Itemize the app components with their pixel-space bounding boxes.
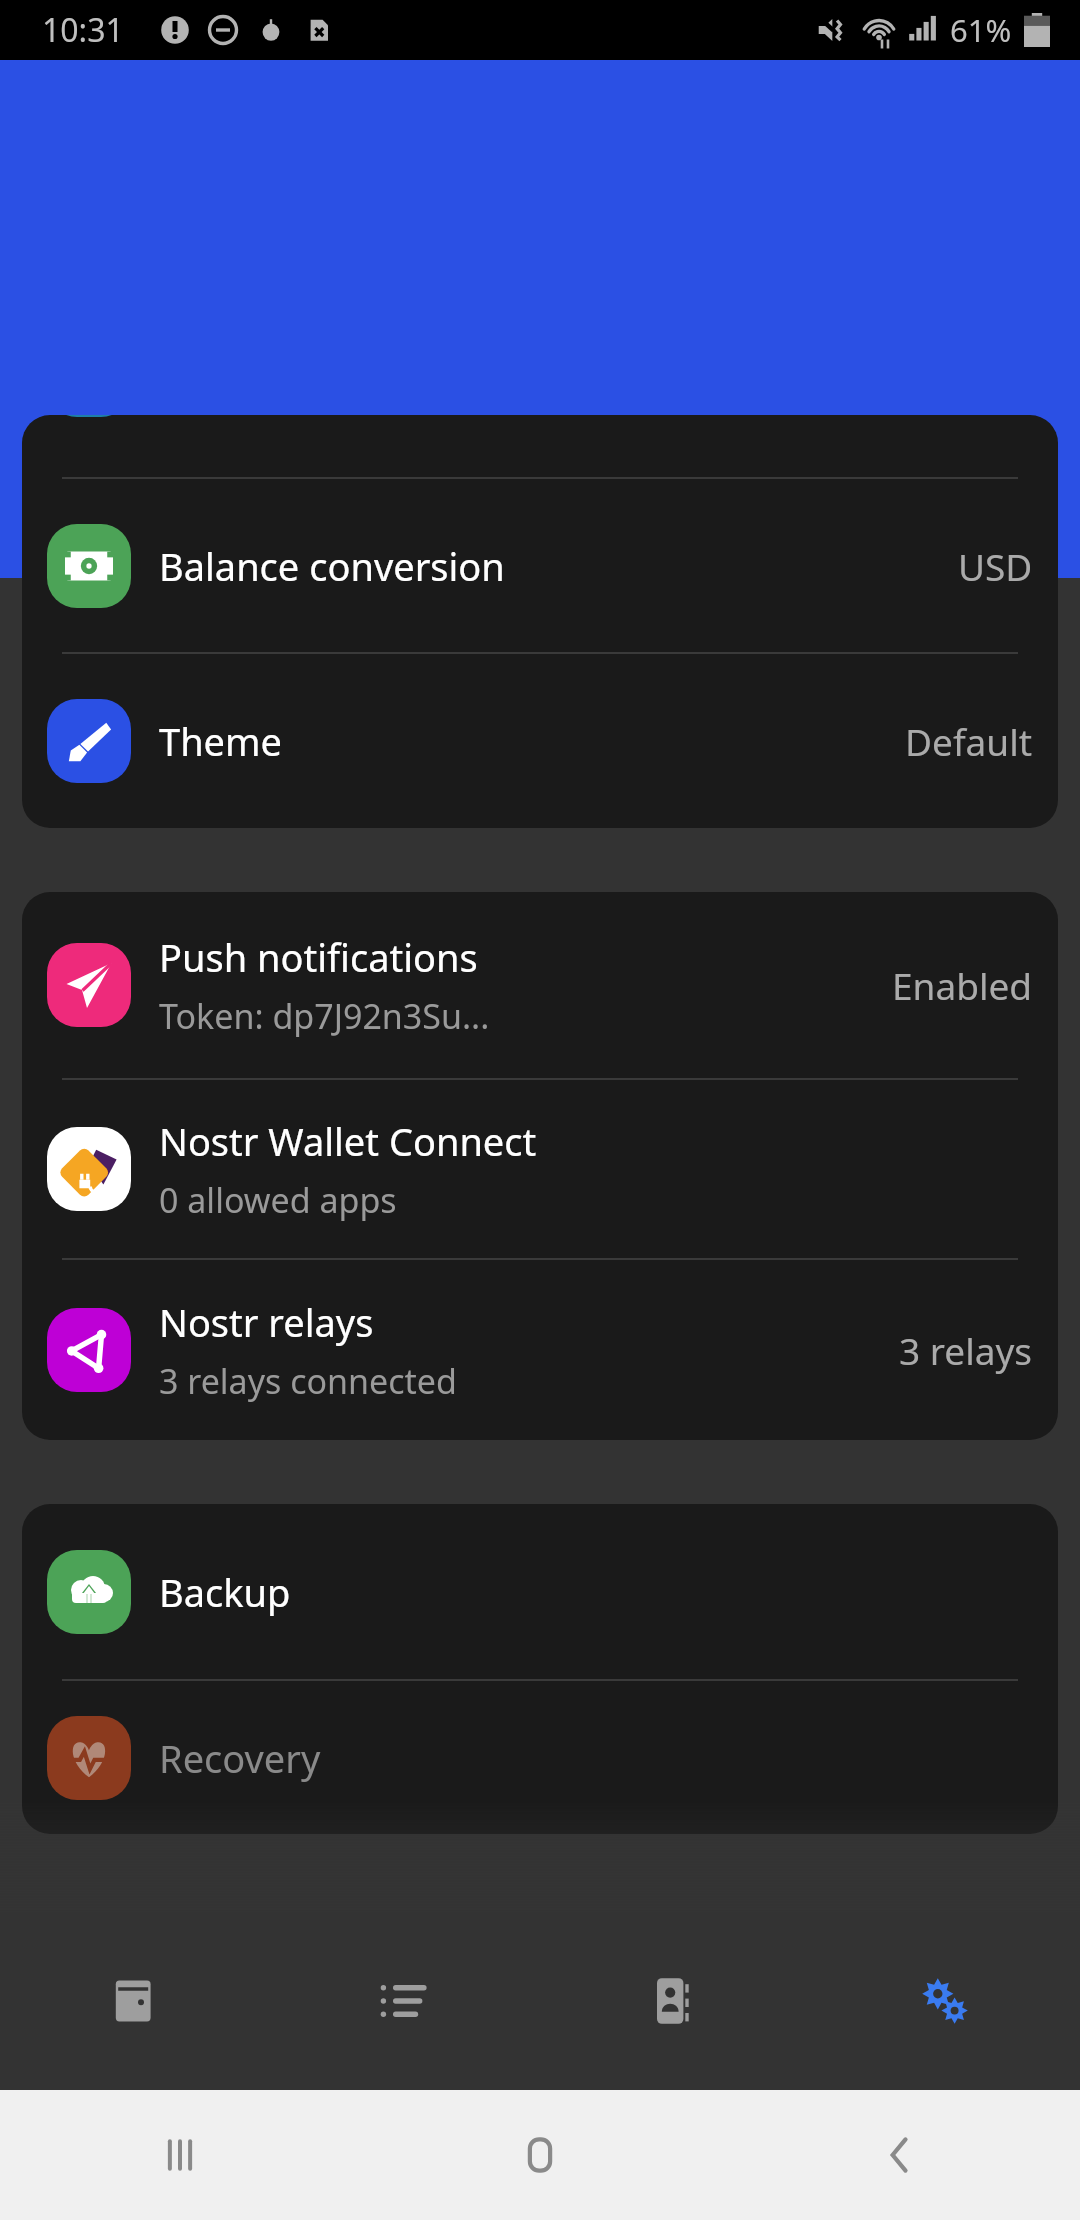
staticText: 10:31 xyxy=(42,8,124,52)
button[interactable]: Settings xyxy=(810,1912,1080,2090)
button[interactable]: Wallet xyxy=(0,1912,270,2090)
staticText: Nostr relays xyxy=(159,1296,374,1348)
button[interactable]: Theme xyxy=(22,654,1058,828)
staticText: Enabled xyxy=(892,960,1033,1010)
button[interactable]: Contacts xyxy=(540,1912,810,2090)
staticText: USD xyxy=(958,541,1033,591)
staticText: 0 allowed apps xyxy=(159,1177,397,1223)
staticText: Nostr Wallet Connect xyxy=(159,1115,537,1167)
staticText: Theme xyxy=(159,715,283,767)
staticText: Push notifications xyxy=(159,931,478,983)
button[interactable]: Push notifications xyxy=(22,892,1058,1078)
button[interactable]: Back xyxy=(720,2090,1080,2220)
button[interactable]: Nostr relays xyxy=(22,1260,1058,1440)
staticText: 3 relays xyxy=(899,1325,1033,1375)
staticText: Settings xyxy=(413,436,668,520)
button[interactable]: Transactions xyxy=(270,1912,540,2090)
button[interactable]: Home xyxy=(360,2090,720,2220)
staticText: Balance conversion xyxy=(159,540,505,592)
button[interactable]: Recovery xyxy=(22,1681,1058,1834)
staticText: 61% xyxy=(950,9,1012,51)
staticText: 3 relays connected xyxy=(159,1358,457,1404)
button[interactable]: Nostr Wallet Connect xyxy=(22,1080,1058,1258)
staticText: Backup xyxy=(159,1566,291,1618)
button[interactable]: Balance conversion xyxy=(22,479,1058,652)
staticText: Recovery xyxy=(159,1732,321,1784)
button[interactable]: Backup xyxy=(22,1504,1058,1679)
staticText: Default xyxy=(905,716,1033,766)
button[interactable]: Recents xyxy=(0,2090,360,2220)
staticText: Token: dp7J92n3Su... xyxy=(159,993,490,1039)
